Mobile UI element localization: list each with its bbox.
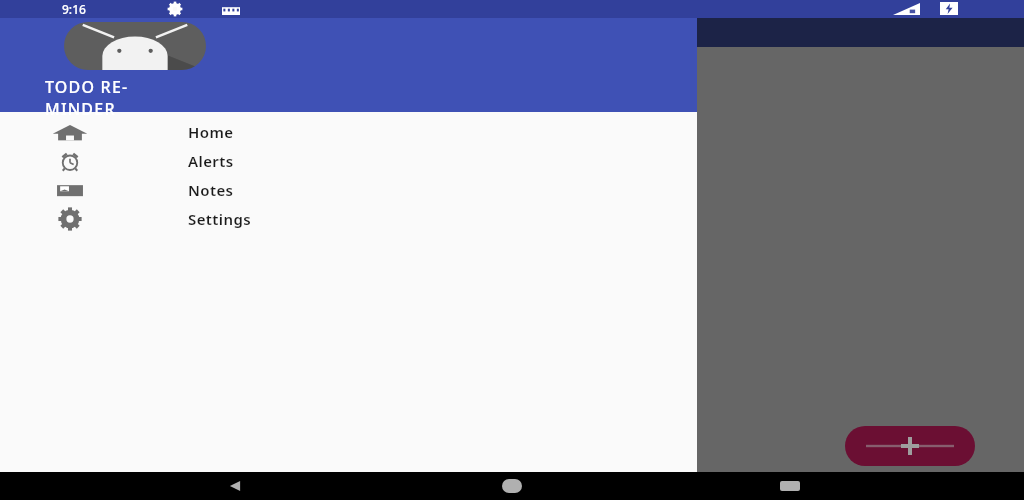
staticText: Settings <box>188 209 252 229</box>
button[interactable]: Settings <box>0 204 697 233</box>
staticText: MINDER <box>45 98 116 120</box>
staticText: Home <box>188 122 234 142</box>
button[interactable]: Alerts <box>0 146 697 175</box>
button[interactable]: Notes <box>0 175 697 204</box>
button[interactable]: Add reminder <box>845 426 975 466</box>
staticText: TODO RE- <box>45 76 129 98</box>
staticText: 9:16 <box>62 1 86 17</box>
staticText: Alerts <box>188 151 234 171</box>
button[interactable]: Home <box>467 472 557 500</box>
button[interactable]: Back <box>190 472 280 500</box>
button[interactable]: Recent apps <box>745 472 835 500</box>
button[interactable]: Home <box>0 117 697 146</box>
staticText: Notes <box>188 180 234 200</box>
